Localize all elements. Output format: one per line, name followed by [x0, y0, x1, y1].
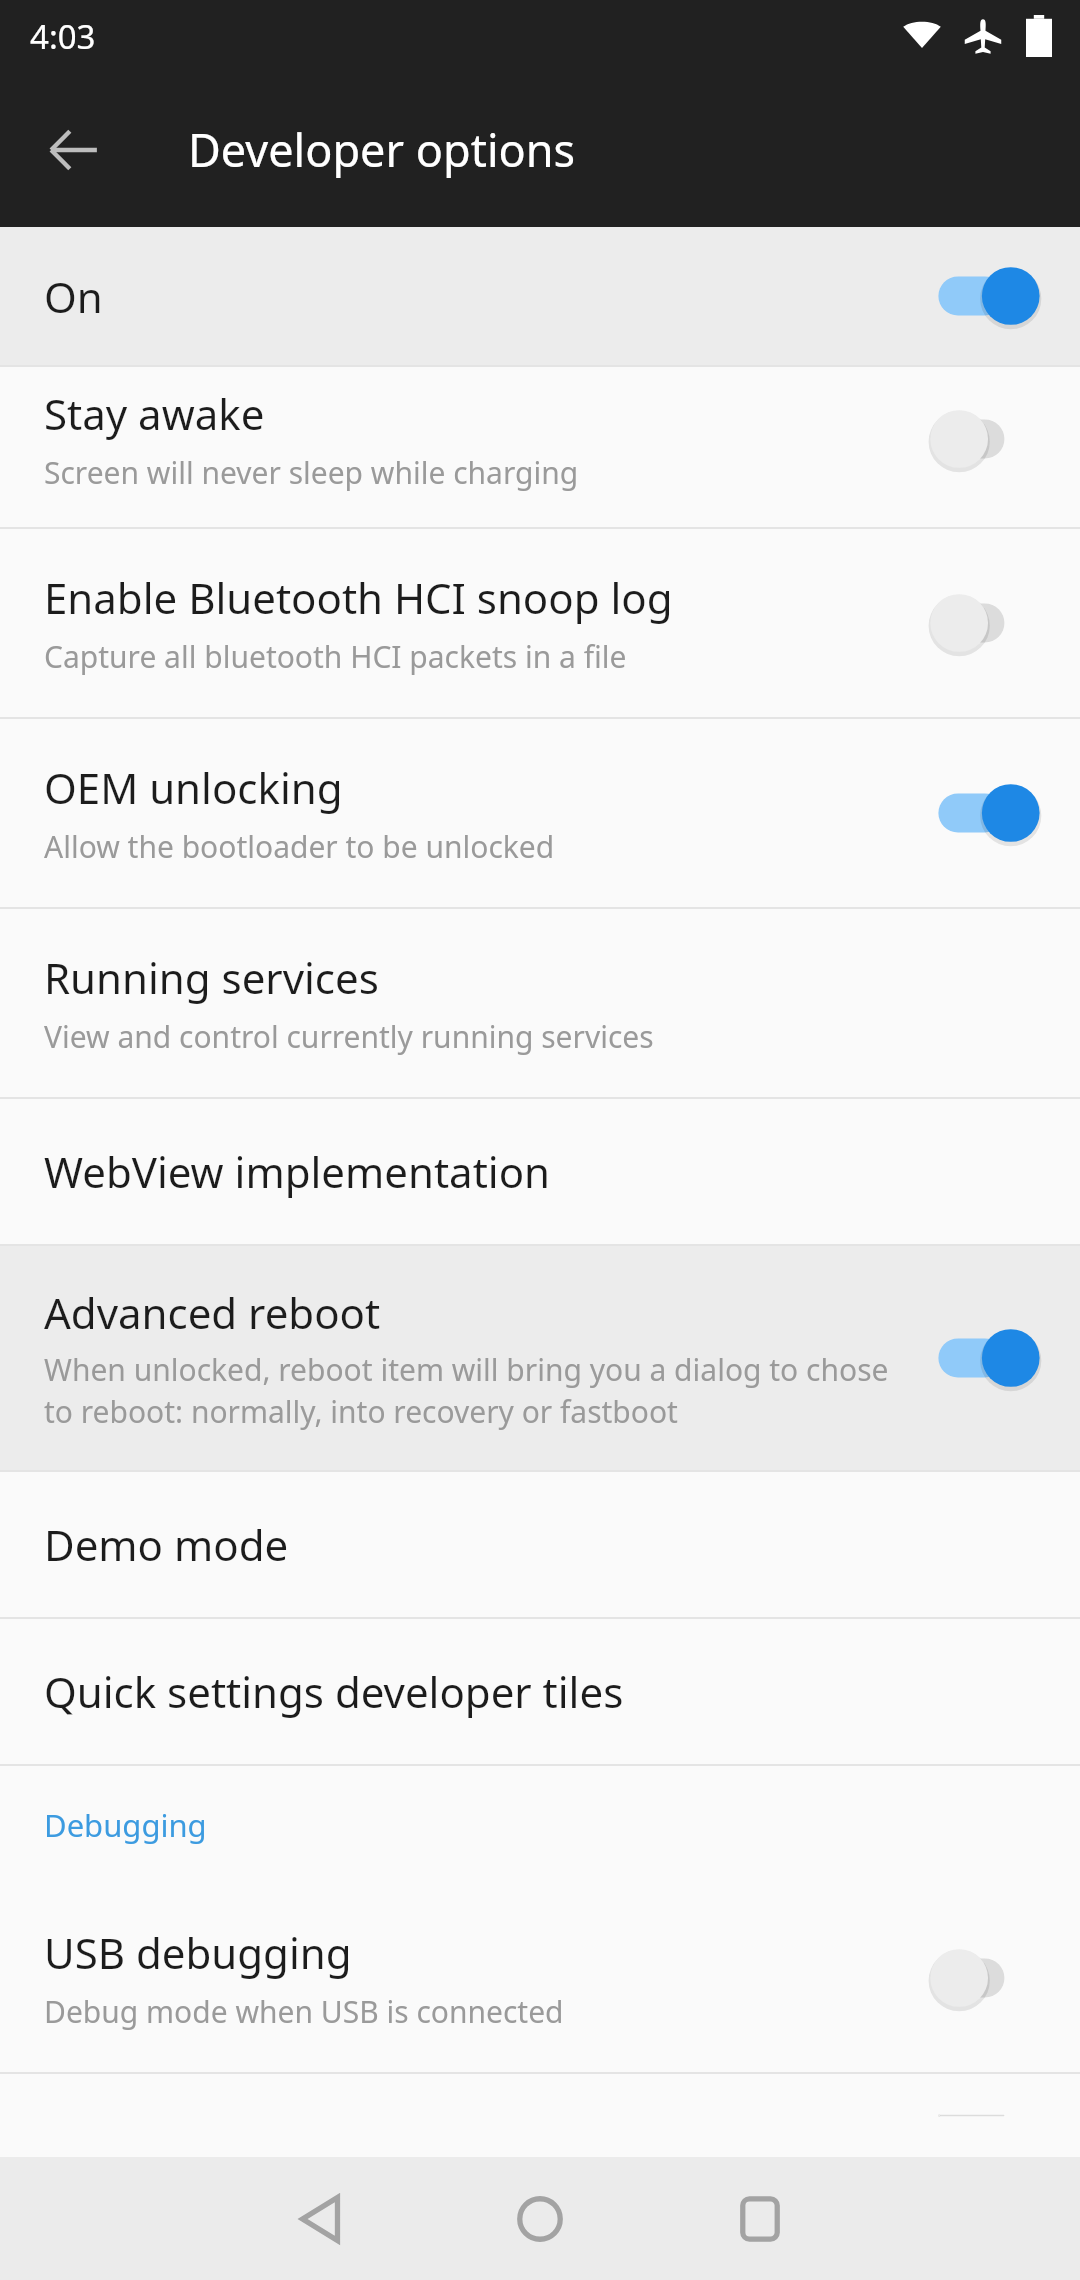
- button[interactable]: Running services: [0, 909, 1080, 1097]
- staticText: Demo mode: [44, 1516, 289, 1573]
- button[interactable]: Recent apps: [702, 2161, 818, 2277]
- button[interactable]: Demo mode: [0, 1472, 1080, 1617]
- staticText: USB debugging: [44, 1924, 352, 1981]
- staticText: Enable Bluetooth HCI snoop log: [44, 569, 673, 626]
- staticText: Running services: [44, 949, 379, 1006]
- button[interactable]: Home: [482, 2161, 598, 2277]
- button[interactable]: WebView implementation: [0, 1099, 1080, 1244]
- button[interactable]: OEM unlocking: [0, 719, 1080, 907]
- staticText: Debugging: [44, 1804, 207, 1846]
- other: Switch off: [934, 2114, 1044, 2117]
- button[interactable]: Back: [262, 2161, 378, 2277]
- staticText: Debug mode when USB is connected: [44, 1991, 564, 2032]
- button[interactable]: Enable Bluetooth HCI snoop log: [0, 529, 1080, 717]
- other: Switch on: [934, 1319, 1044, 1397]
- button[interactable]: USB debugging: [0, 1884, 1080, 2072]
- button[interactable]: Back: [26, 102, 122, 198]
- staticText: WebView implementation: [44, 1143, 551, 1200]
- button[interactable]: Advanced reboot: [0, 1246, 1080, 1470]
- button[interactable]: Quick settings developer tiles: [0, 1619, 1080, 1764]
- staticText: On: [44, 268, 103, 325]
- staticText: Capture all bluetooth HCI packets in a f…: [44, 636, 627, 677]
- staticText: Advanced reboot: [44, 1284, 381, 1341]
- button[interactable]: On: [0, 227, 1080, 365]
- staticText: Screen will never sleep while charging: [44, 452, 579, 493]
- staticText: View and control currently running servi…: [44, 1016, 654, 1057]
- staticText: Allow the bootloader to be unlocked: [44, 826, 555, 867]
- staticText: When unlocked, reboot item will bring yo…: [44, 1349, 910, 1432]
- other: Switch off: [934, 1939, 1044, 2017]
- button[interactable]: Stay awake: [0, 367, 1080, 527]
- other: Switch off: [934, 400, 1044, 478]
- staticText: OEM unlocking: [44, 759, 343, 816]
- other: Switch on: [934, 774, 1044, 852]
- other: Switch off: [934, 584, 1044, 662]
- staticText: Quick settings developer tiles: [44, 1663, 624, 1720]
- staticText: Developer options: [188, 119, 576, 180]
- staticText: Stay awake: [44, 385, 265, 442]
- other: Switch on: [934, 257, 1044, 335]
- staticText: 4:03: [30, 14, 96, 59]
